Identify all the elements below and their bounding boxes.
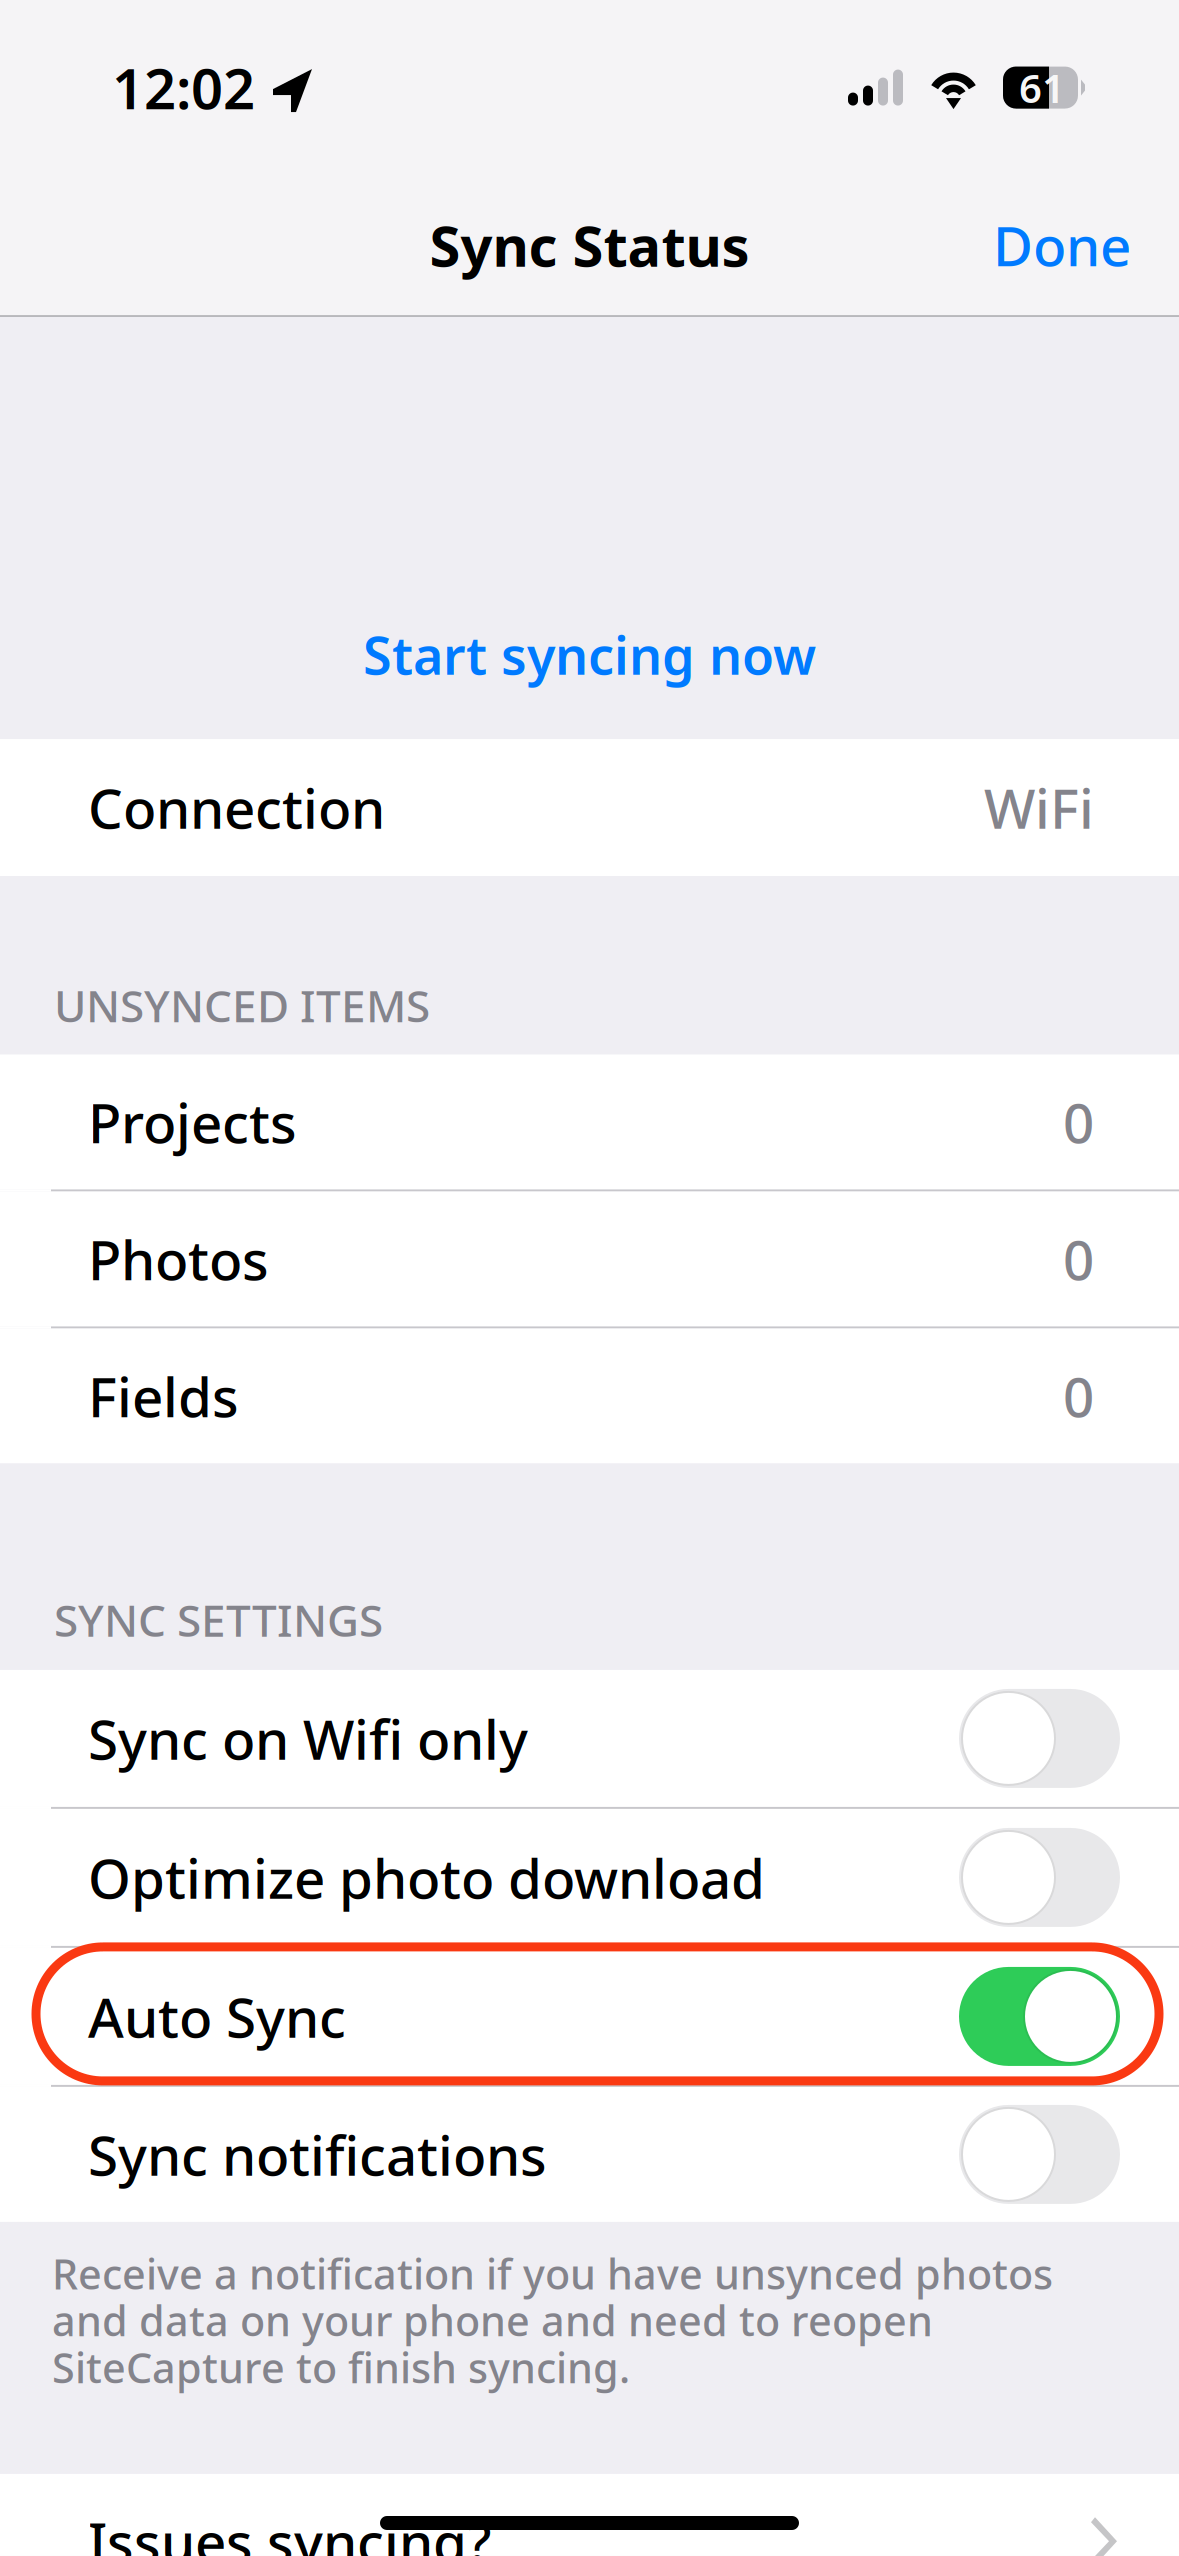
staticText: Projects: [88, 1086, 297, 1158]
button[interactable]: [959, 2105, 1120, 2204]
staticText: Issues syncing?: [88, 2505, 491, 2556]
staticText: WiFi: [984, 771, 1094, 844]
staticText: SYNC SETTINGS: [54, 1590, 383, 1649]
button[interactable]: Connection: [0, 739, 1179, 876]
staticText: 0: [1063, 1360, 1094, 1432]
staticText: Sync notifications: [88, 2118, 547, 2191]
staticText: Sync Status: [429, 208, 749, 282]
staticText: Sync on Wifi only: [88, 1702, 528, 1775]
button[interactable]: [959, 1828, 1120, 1927]
button[interactable]: Issues syncing?: [0, 2474, 1179, 2556]
button[interactable]: Start syncing now: [0, 598, 1179, 711]
staticText: 0: [1063, 1223, 1094, 1295]
staticText: 0: [1063, 1086, 1094, 1158]
staticText: and data on your phone and need to reope…: [52, 2293, 933, 2348]
staticText: 61: [1019, 61, 1065, 114]
staticText: Optimize photo download: [88, 1841, 765, 1914]
staticText: Connection: [88, 771, 385, 844]
staticText: UNSYNCED ITEMS: [54, 976, 430, 1034]
button[interactable]: Done: [949, 185, 1179, 305]
button[interactable]: [959, 1967, 1120, 2066]
staticText: Photos: [88, 1223, 269, 1295]
staticText: Start syncing now: [363, 620, 816, 689]
staticText: Auto Sync: [88, 1980, 346, 2053]
staticText: Done: [993, 209, 1131, 281]
button[interactable]: [959, 1689, 1120, 1788]
staticText: SiteCapture to finish syncing.: [52, 2340, 630, 2395]
staticText: 12:02: [112, 50, 255, 125]
staticText: Receive a notification if you have unsyn…: [52, 2246, 1053, 2301]
staticText: Fields: [88, 1360, 239, 1432]
